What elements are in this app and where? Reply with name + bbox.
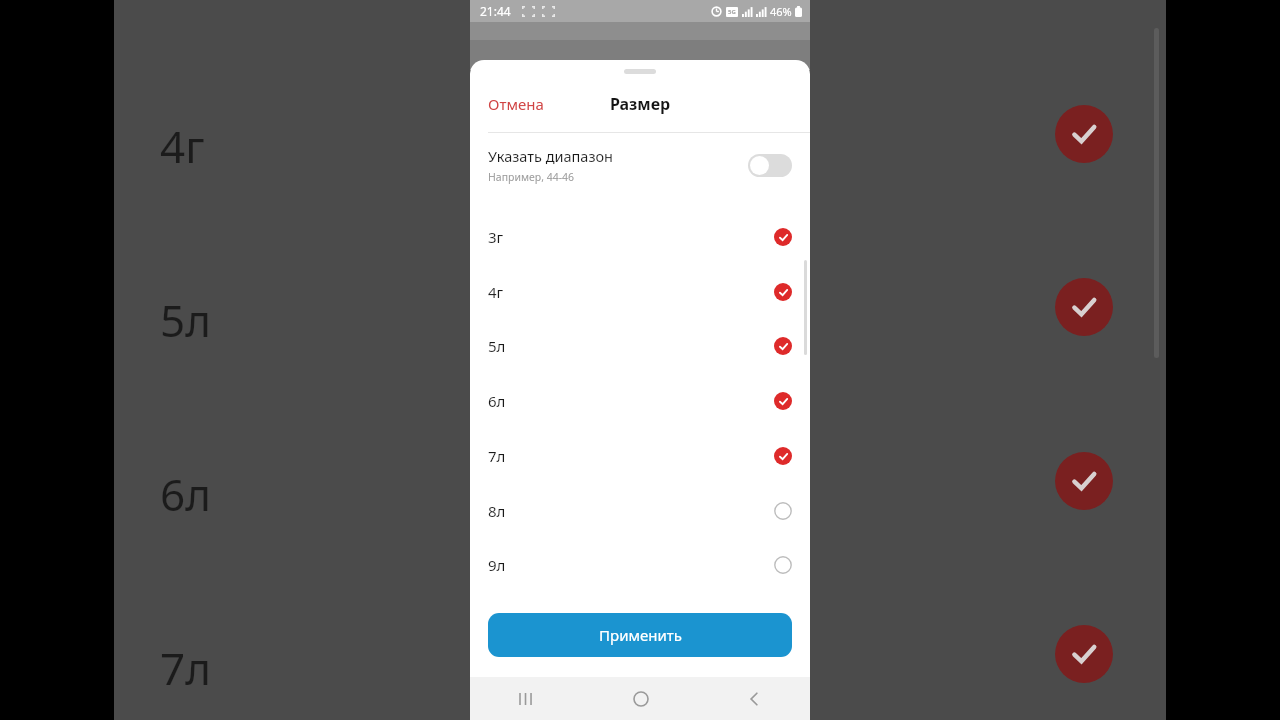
staticText: 3г	[488, 227, 774, 247]
button[interactable]: 8л	[470, 484, 810, 538]
button[interactable]: Home	[584, 677, 697, 720]
staticText: Отмена	[488, 94, 544, 114]
staticText: Применить	[599, 625, 682, 645]
button[interactable]: Recents	[470, 677, 584, 720]
staticText: 21:44	[480, 3, 511, 19]
staticText: 6л	[160, 464, 211, 524]
button[interactable]: 6л	[470, 374, 810, 428]
staticText: 5л	[488, 336, 774, 356]
button[interactable]: 5л	[470, 319, 810, 373]
staticText: 4г	[160, 116, 205, 176]
staticText: 9л	[488, 555, 774, 575]
staticText: Размер	[610, 93, 671, 115]
button[interactable]: Указать диапазон	[470, 133, 810, 197]
staticText: 8л	[488, 501, 774, 521]
staticText: 46%	[770, 4, 792, 19]
staticText: 4г	[488, 282, 774, 302]
staticText: 7л	[160, 638, 211, 698]
button[interactable]: 4г	[470, 265, 810, 319]
button[interactable]: 9л	[470, 538, 810, 592]
staticText: 5G	[728, 8, 736, 16]
button[interactable]: 7л	[470, 429, 810, 483]
staticText: 6л	[488, 391, 774, 411]
button[interactable]: Back	[697, 677, 810, 720]
button[interactable]: 3г	[470, 210, 810, 264]
staticText: 7л	[488, 446, 774, 466]
other: Указать диапазон	[748, 154, 792, 177]
staticText: Указать диапазон	[488, 146, 613, 166]
staticText: Например, 44-46	[488, 170, 575, 184]
button[interactable]: Применить	[488, 613, 792, 657]
button[interactable]: Отмена	[470, 86, 562, 122]
staticText: 5л	[160, 290, 211, 350]
